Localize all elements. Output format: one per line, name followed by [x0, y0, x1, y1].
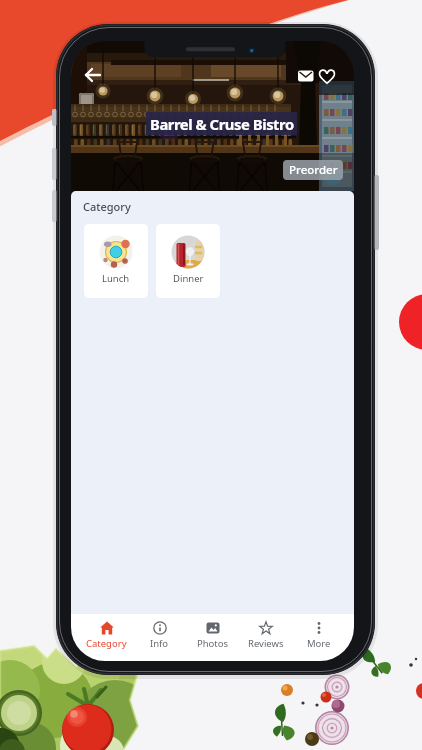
button[interactable]: Category — [80, 614, 133, 661]
staticText: More — [307, 637, 331, 650]
button[interactable]: Preorder — [283, 160, 343, 180]
button[interactable]: More — [292, 614, 345, 661]
button[interactable] — [298, 69, 314, 83]
button[interactable]: Info — [133, 614, 186, 661]
button[interactable]: Reviews — [239, 614, 292, 661]
staticText: Lunch — [102, 272, 130, 285]
button[interactable] — [319, 69, 335, 84]
button[interactable] — [79, 61, 107, 89]
staticText: Info — [150, 637, 169, 650]
staticText: Preorder — [289, 162, 338, 178]
staticText: Photos — [197, 637, 229, 650]
staticText: Dinner — [173, 272, 204, 285]
staticText: Category — [86, 637, 127, 650]
staticText: Reviews — [248, 637, 284, 650]
staticText: Barrel & Cruse Bistro — [150, 114, 294, 134]
button[interactable]: Dinner — [156, 224, 220, 298]
button[interactable]: Photos — [186, 614, 239, 661]
staticText: Category — [83, 199, 131, 214]
button[interactable]: Lunch — [84, 224, 148, 298]
